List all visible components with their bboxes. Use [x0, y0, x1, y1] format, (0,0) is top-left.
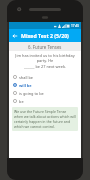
button[interactable]: will be	[9, 81, 81, 89]
staticText: shall be	[19, 75, 34, 80]
staticText: be	[19, 99, 24, 104]
staticText: Jim has invited us to his birthday party…	[12, 53, 78, 70]
button[interactable]: be	[9, 97, 81, 105]
staticText: We use the Future Simple Tense when we t…	[14, 109, 76, 129]
staticText: 6. Future Tenses	[28, 44, 62, 50]
staticText: Mixed Test 2 (5/20)	[21, 32, 69, 39]
staticText: 17:45	[71, 24, 80, 28]
staticText: will be	[19, 83, 32, 88]
staticText: is going to be	[19, 91, 44, 96]
button[interactable]: shall be	[9, 73, 81, 81]
button[interactable]: Back	[9, 29, 21, 42]
button[interactable]: is going to be	[9, 89, 81, 97]
